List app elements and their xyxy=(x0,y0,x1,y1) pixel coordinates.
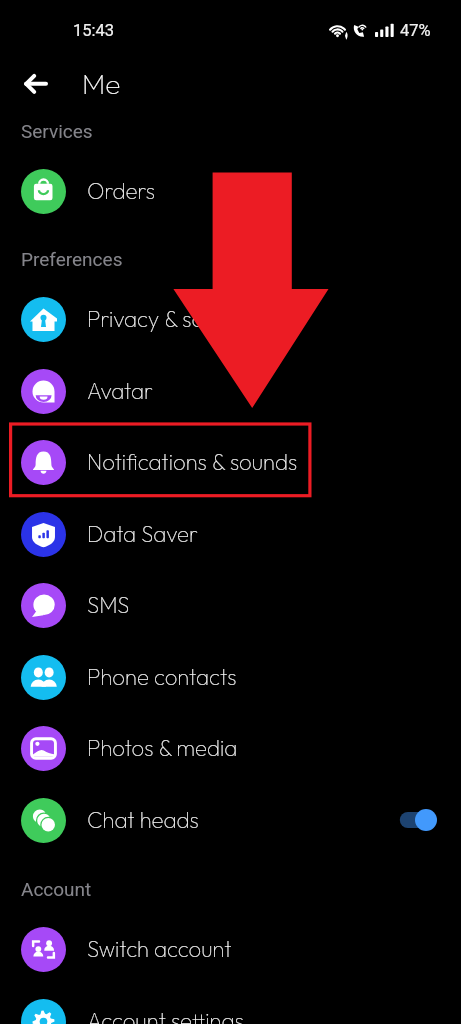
staticText: Privacy & safety xyxy=(87,305,243,333)
button[interactable]: SMS xyxy=(0,569,461,641)
staticText: Preferences xyxy=(21,248,123,270)
staticText: Photos & media xyxy=(87,734,238,762)
staticText: Account xyxy=(21,878,92,900)
staticText: Services xyxy=(21,120,93,142)
button[interactable]: Switch account xyxy=(0,913,461,985)
button[interactable]: Notifications & sounds xyxy=(0,426,461,498)
button[interactable]: Avatar xyxy=(0,355,461,427)
staticText: Chat heads xyxy=(87,806,199,834)
staticText: SMS xyxy=(87,591,130,619)
staticText: Account settings xyxy=(87,1007,244,1024)
button[interactable]: Chat heads xyxy=(0,784,461,856)
button[interactable]: Privacy & safety xyxy=(0,283,461,355)
staticText: 47% xyxy=(400,21,431,40)
staticText: Switch account xyxy=(87,935,232,963)
staticText: Notifications & sounds xyxy=(87,448,298,476)
staticText: Avatar xyxy=(87,377,153,405)
button[interactable]: Photos & media xyxy=(0,712,461,784)
staticText: Me xyxy=(82,66,121,101)
button[interactable]: Account settings xyxy=(0,985,461,1024)
staticText: Phone contacts xyxy=(87,663,237,691)
staticText: Data Saver xyxy=(87,520,198,548)
staticText: Orders xyxy=(87,177,156,205)
button[interactable]: Phone contacts xyxy=(0,641,461,713)
button[interactable]: Back xyxy=(13,61,58,106)
button[interactable]: Orders xyxy=(0,155,461,227)
staticText: 15:43 xyxy=(73,21,115,40)
button[interactable]: Chat heads toggle xyxy=(393,800,449,840)
button[interactable]: Data Saver xyxy=(0,498,461,570)
